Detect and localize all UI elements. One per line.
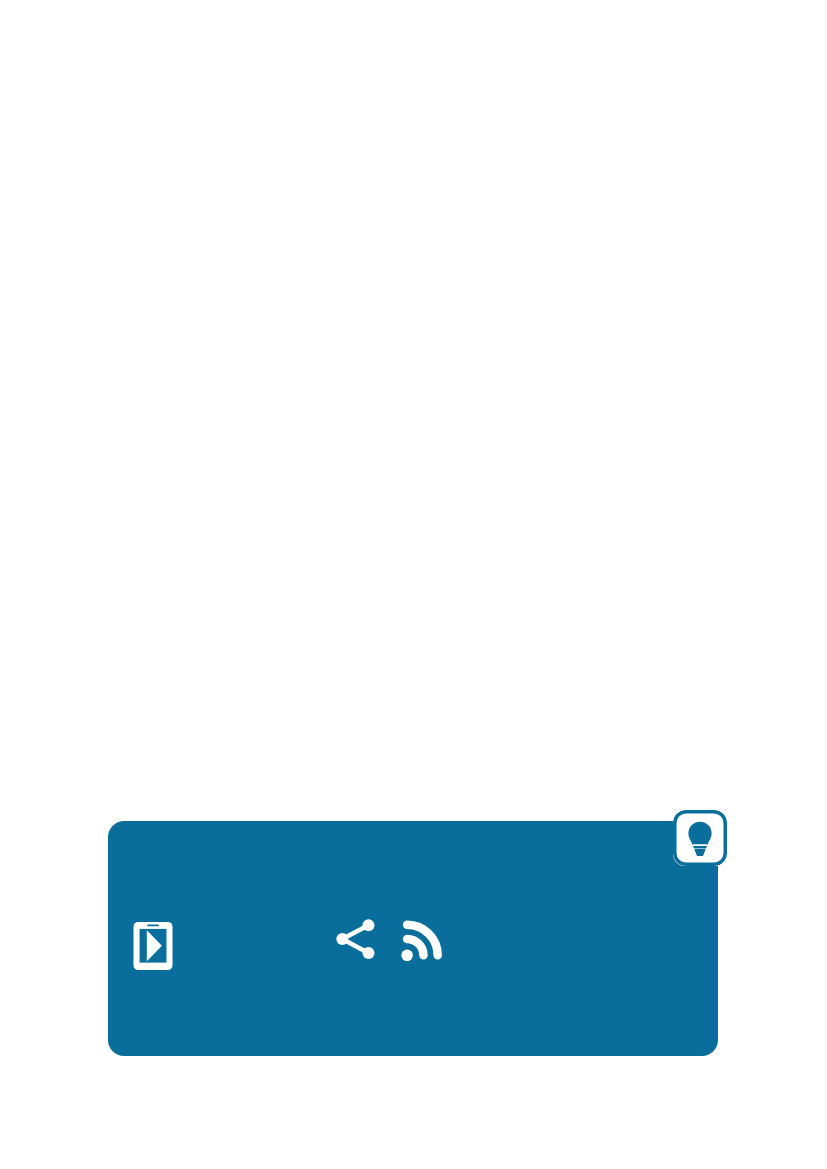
button[interactable]: RSS feed bbox=[395, 911, 451, 967]
button[interactable]: Tip bbox=[673, 810, 727, 866]
button[interactable]: Play on device bbox=[127, 920, 179, 972]
button[interactable]: Play on device bbox=[108, 821, 718, 1056]
button[interactable]: Share bbox=[328, 911, 384, 967]
